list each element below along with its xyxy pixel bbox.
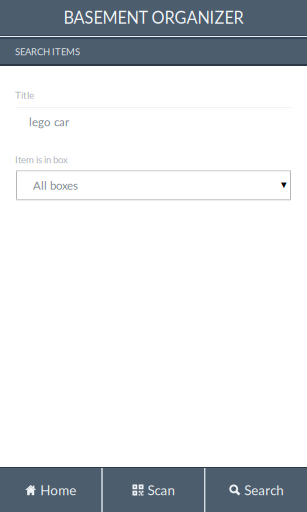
button[interactable]: Home <box>0 468 101 512</box>
staticText: Home <box>40 482 76 498</box>
staticText: Scan <box>147 482 174 498</box>
staticText: SEARCH ITEMS <box>15 46 80 57</box>
staticText: All boxes <box>33 178 78 192</box>
button[interactable]: Search <box>206 468 307 512</box>
staticText: Search <box>244 482 283 498</box>
button[interactable]: Scan <box>103 468 204 512</box>
staticText: lego car <box>29 115 69 129</box>
staticText: Item is in box <box>15 154 68 165</box>
staticText: BASEMENT ORGANIZER <box>63 8 243 27</box>
staticText: Title <box>15 89 34 101</box>
staticText: ▾ <box>281 178 287 191</box>
